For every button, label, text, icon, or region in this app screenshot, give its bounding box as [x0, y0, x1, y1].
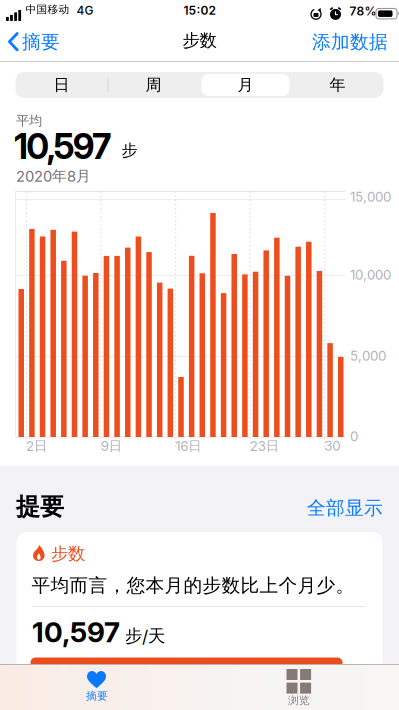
- staticText: 摘要: [22, 30, 60, 53]
- staticText: 16日: [175, 438, 201, 454]
- staticText: 摘要: [86, 689, 108, 703]
- staticText: 平均而言，您本月的步数比上个月少。: [31, 574, 354, 597]
- button[interactable]: 添加数据: [312, 30, 399, 53]
- staticText: 15:02: [183, 3, 215, 18]
- staticText: 4G: [76, 3, 93, 18]
- staticText: 年: [329, 75, 345, 95]
- staticText: 周: [145, 75, 161, 95]
- staticText: 10,597: [14, 126, 111, 167]
- staticText: 全部显示: [307, 496, 383, 519]
- staticText: 2日: [26, 438, 47, 454]
- button[interactable]: 周: [107, 72, 199, 98]
- staticText: 9日: [101, 438, 122, 454]
- staticText: 78%: [349, 4, 376, 18]
- staticText: 0: [350, 429, 358, 444]
- button[interactable]: 月: [199, 72, 291, 98]
- staticText: 步: [121, 140, 137, 160]
- staticText: 浏览: [288, 694, 310, 707]
- staticText: 平均: [16, 112, 42, 129]
- staticText: 提要: [16, 492, 64, 521]
- staticText: 23日: [250, 438, 279, 454]
- staticText: 步/天: [125, 625, 165, 647]
- button[interactable]: 返回摘要: [0, 22, 60, 62]
- button[interactable]: 浏览: [199, 664, 399, 710]
- staticText: 日: [53, 75, 69, 95]
- staticText: 10,597: [32, 615, 120, 648]
- button[interactable]: 年: [291, 72, 383, 98]
- staticText: 中国移动: [25, 3, 69, 16]
- staticText: 月: [237, 75, 253, 95]
- staticText: 15,000: [350, 189, 391, 205]
- staticText: 5,000: [350, 348, 386, 364]
- staticText: 2020年8月: [16, 167, 91, 185]
- staticText: 30: [324, 438, 340, 454]
- staticText: 步数: [182, 30, 216, 51]
- button[interactable]: 全部显示: [307, 496, 399, 519]
- staticText: 步数: [51, 543, 85, 564]
- staticText: 10,000: [350, 267, 391, 283]
- staticText: 添加数据: [312, 30, 388, 53]
- button[interactable]: 步数: [16, 532, 382, 710]
- button[interactable]: 日: [15, 72, 107, 98]
- button[interactable]: 摘要: [0, 664, 199, 710]
